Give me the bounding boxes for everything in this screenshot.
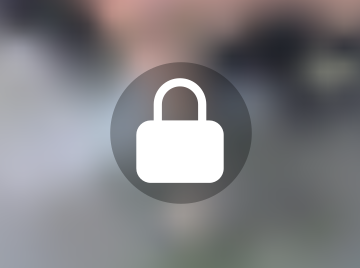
- button[interactable]: Unlock: [0, 0, 360, 268]
